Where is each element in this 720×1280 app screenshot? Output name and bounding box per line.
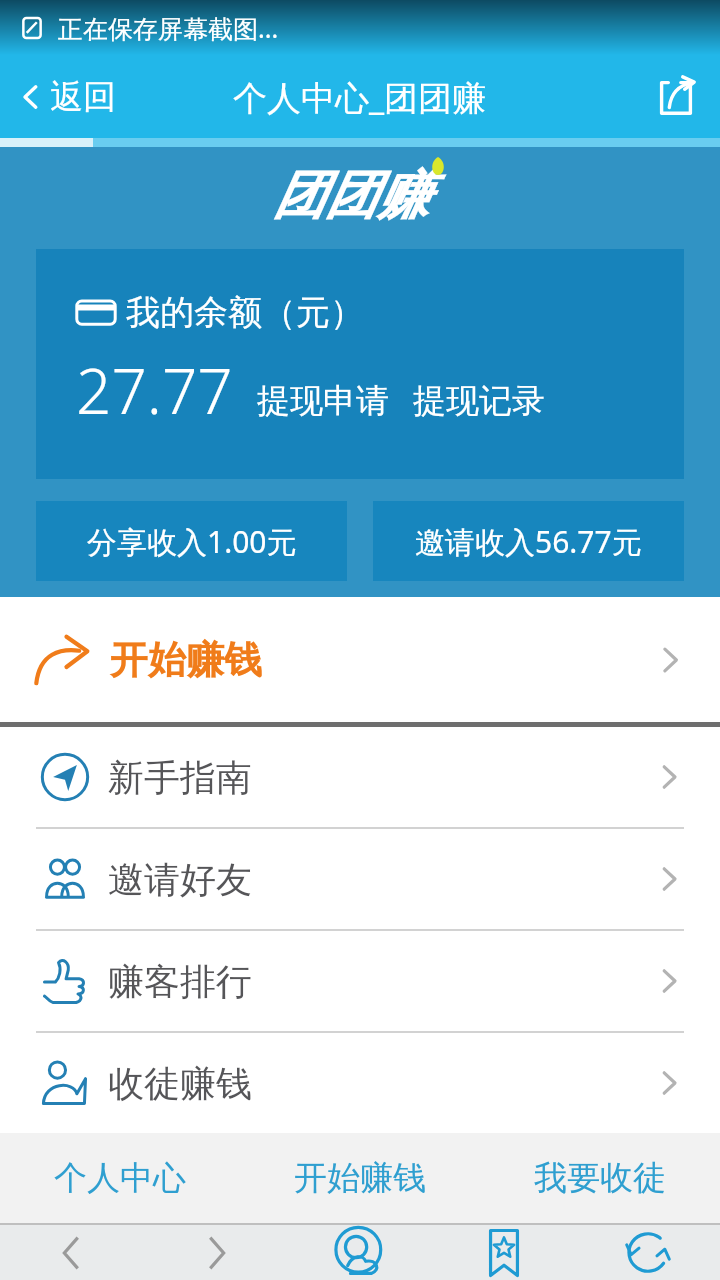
- staticText: 提现申请: [257, 380, 389, 422]
- staticText: 赚客排行: [108, 959, 252, 1004]
- button[interactable]: 提现记录: [413, 380, 545, 432]
- staticText: 收徒赚钱: [108, 1061, 252, 1106]
- button[interactable]: Forward: [144, 1225, 288, 1280]
- staticText: 个人中心: [54, 1157, 186, 1199]
- button[interactable]: 开始赚钱: [240, 1133, 480, 1223]
- staticText: 邀请好友: [108, 857, 252, 902]
- button[interactable]: 新手指南: [0, 727, 720, 827]
- staticText: 返回: [50, 76, 116, 118]
- staticText: 开始赚钱: [294, 1157, 426, 1199]
- staticText: 提现记录: [413, 380, 545, 422]
- staticText: 个人中心_团团赚: [233, 74, 487, 120]
- button[interactable]: 提现申请: [257, 380, 389, 432]
- button[interactable]: 赚客排行: [0, 931, 720, 1031]
- button[interactable]: 我要收徒: [480, 1133, 720, 1223]
- staticText: 27.77: [76, 348, 233, 432]
- button[interactable]: Back: [0, 1225, 144, 1280]
- staticText: 分享收入1.00元: [87, 521, 297, 562]
- button[interactable]: 我的余额（元）: [36, 249, 684, 479]
- button[interactable]: 收徒赚钱: [0, 1033, 720, 1133]
- button[interactable]: Share: [632, 61, 720, 133]
- button[interactable]: Bookmarks: [432, 1225, 576, 1280]
- button[interactable]: Refresh: [576, 1225, 720, 1280]
- button[interactable]: 邀请收入56.77元: [373, 501, 684, 581]
- staticText: 新手指南: [108, 755, 252, 800]
- button[interactable]: 个人中心: [0, 1133, 240, 1223]
- button[interactable]: Home: [288, 1225, 432, 1280]
- staticText: 邀请收入56.77元: [415, 521, 642, 562]
- staticText: 正在保存屏幕截图...: [58, 11, 279, 45]
- button[interactable]: 返回: [0, 66, 132, 128]
- button[interactable]: 开始赚钱: [0, 597, 720, 722]
- staticText: 团团赚: [273, 163, 429, 229]
- staticText: 我的余额（元）: [126, 291, 364, 334]
- staticText: 开始赚钱: [110, 636, 262, 684]
- button[interactable]: 邀请好友: [0, 829, 720, 929]
- button[interactable]: 分享收入1.00元: [36, 501, 347, 581]
- staticText: 我要收徒: [534, 1157, 666, 1199]
